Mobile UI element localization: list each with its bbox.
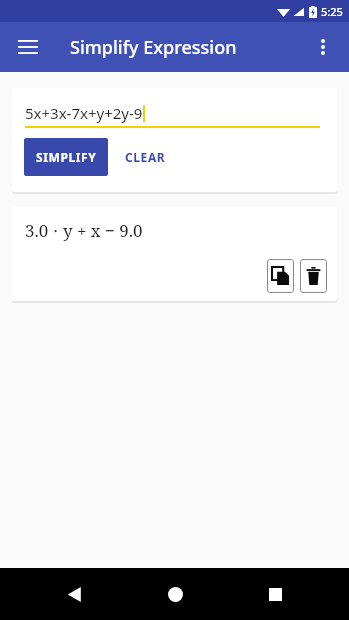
button[interactable]: CLEAR <box>108 138 183 176</box>
button[interactable]: Delete result <box>300 259 327 293</box>
button[interactable]: Back <box>48 568 100 620</box>
button[interactable]: More options <box>303 27 343 67</box>
button[interactable]: Recent apps <box>249 568 301 620</box>
staticText: SIMPLIFY <box>36 149 97 165</box>
staticText: CLEAR <box>125 149 166 165</box>
staticText: 5x+3x-7x+y+2y-9 <box>25 103 143 123</box>
button[interactable]: Home <box>149 568 201 620</box>
button[interactable]: SIMPLIFY <box>24 138 108 176</box>
staticText: 3.0 ⋅ y + x − 9.0 <box>25 219 143 242</box>
staticText: 5:25 <box>321 4 343 19</box>
button[interactable]: Open navigation menu <box>8 27 48 67</box>
staticText: Simplify Expression <box>70 35 237 60</box>
button[interactable]: Copy result <box>267 259 294 293</box>
